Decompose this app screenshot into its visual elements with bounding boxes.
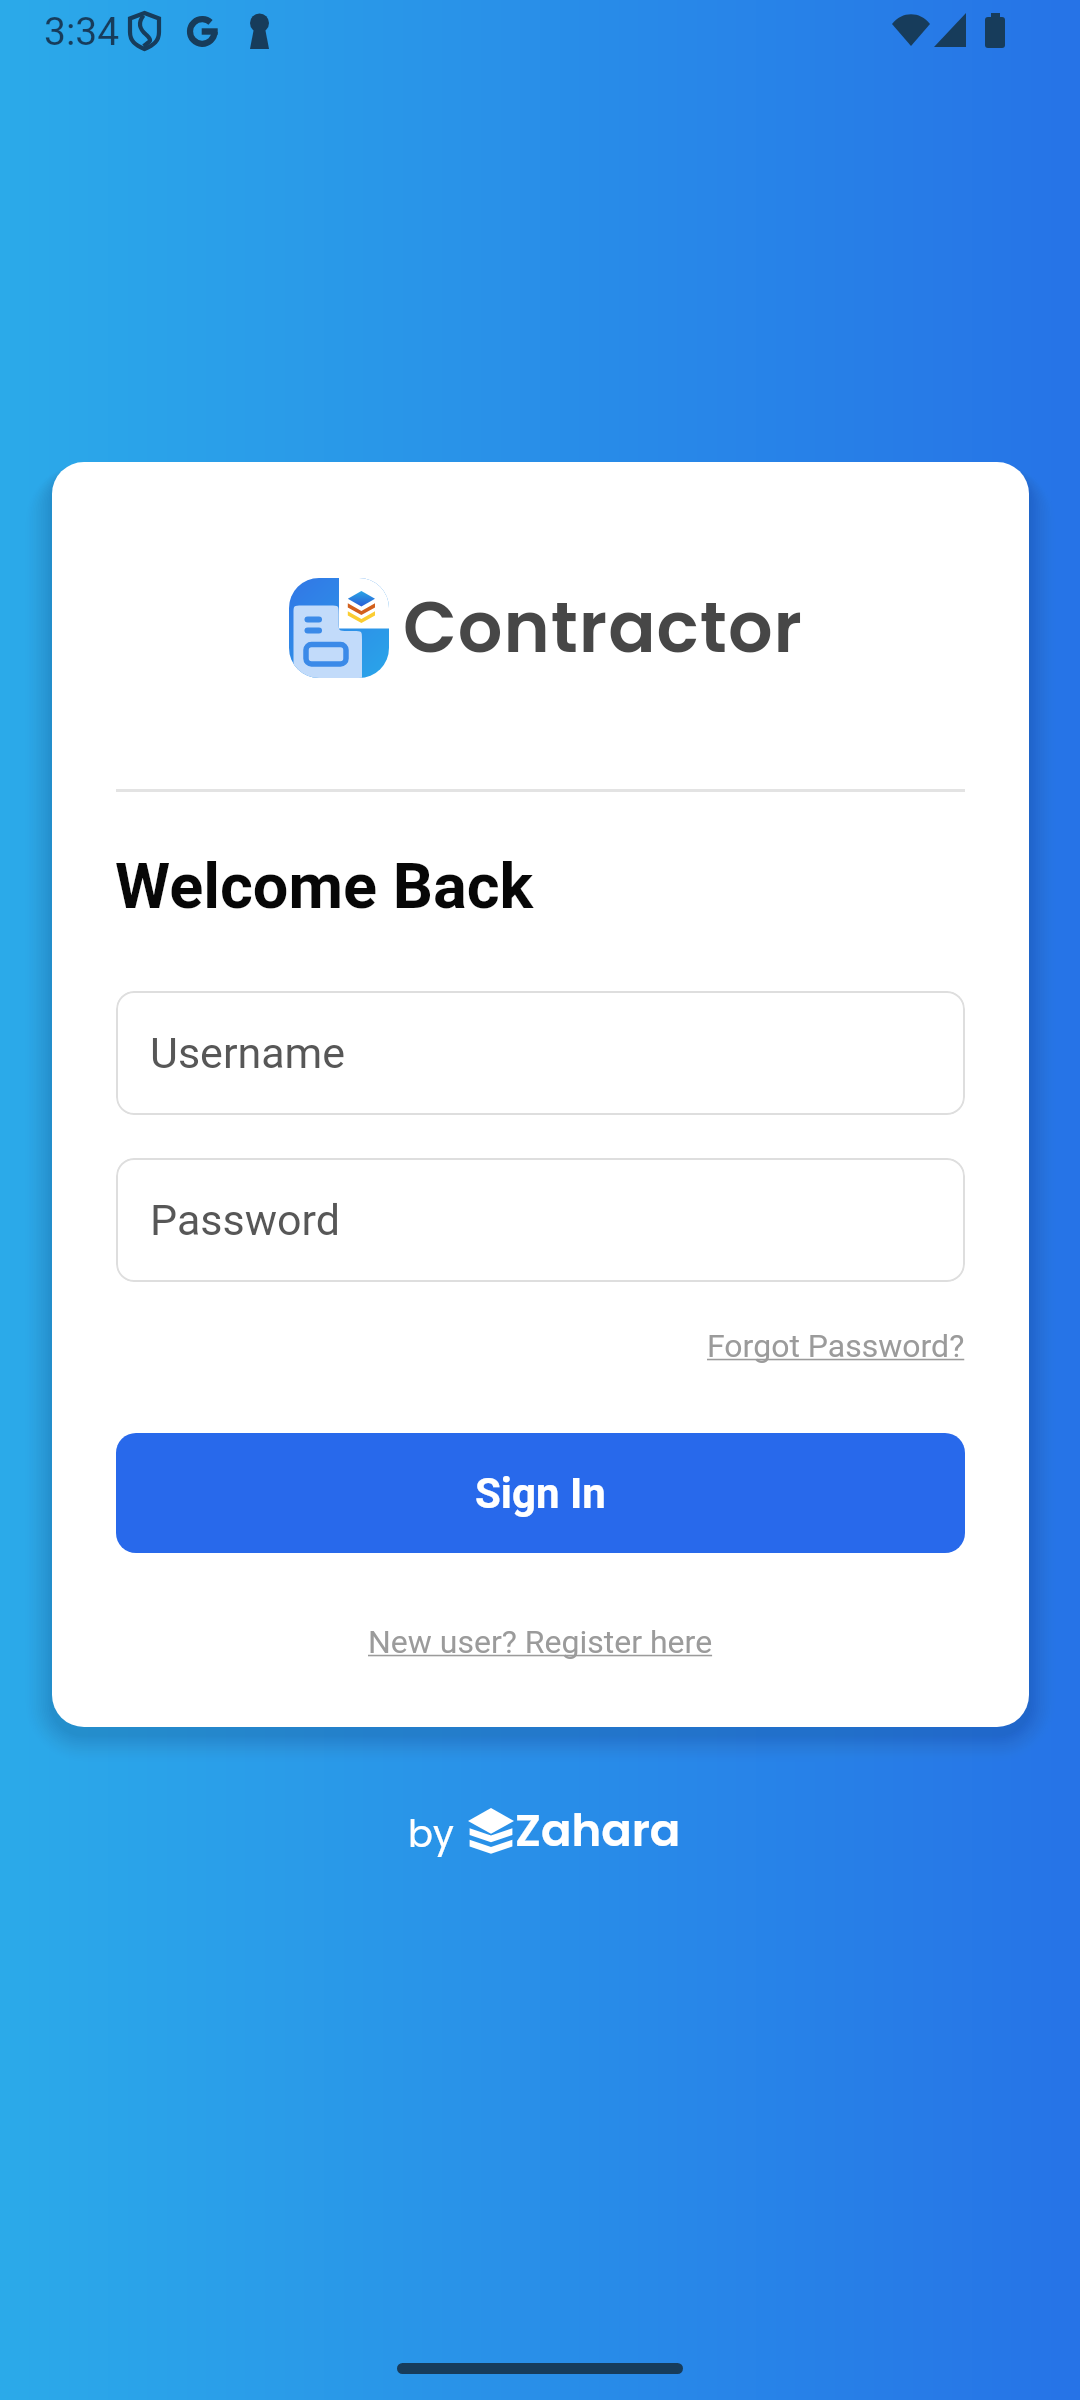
- staticText: Contractor: [403, 578, 803, 676]
- button[interactable]: New user? Register here: [348, 1607, 733, 1677]
- staticText: Forgot Password?: [707, 1327, 965, 1365]
- staticText: by: [408, 1808, 454, 1860]
- staticText: Password: [150, 1195, 340, 1245]
- button[interactable]: Password: [116, 1158, 965, 1282]
- staticText: Sign In: [475, 1469, 606, 1518]
- button[interactable]: Username: [116, 991, 965, 1115]
- staticText: Zahara: [515, 1799, 681, 1862]
- button[interactable]: Sign In: [116, 1433, 965, 1553]
- staticText: Username: [150, 1028, 346, 1078]
- button[interactable]: Forgot Password?: [691, 1311, 981, 1381]
- other: Contractor app logo: [289, 578, 389, 678]
- staticText: New user? Register here: [368, 1623, 713, 1661]
- staticText: Welcome Back: [115, 850, 534, 924]
- staticText: 3:34: [44, 9, 120, 55]
